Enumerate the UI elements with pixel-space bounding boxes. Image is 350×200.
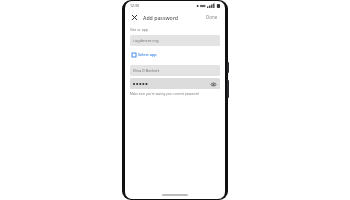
button[interactable]: Done	[203, 12, 221, 22]
staticText: Site or app	[130, 27, 149, 32]
button[interactable]: Elisa D Beckett	[130, 65, 220, 76]
button[interactable]: Show password	[130, 78, 220, 89]
button[interactable]: Select app	[130, 50, 159, 59]
staticText: 12:30	[130, 3, 139, 8]
staticText: Add password	[143, 14, 179, 21]
staticText: Select app	[138, 52, 157, 57]
staticText: Make sure you're saving your current pas…	[130, 92, 199, 96]
staticText: Elisa D Beckett	[133, 68, 160, 73]
staticText: i.ugdmere.org	[133, 38, 159, 43]
button[interactable]: i.ugdmere.org	[130, 35, 220, 46]
button[interactable]: Show password	[209, 80, 217, 88]
staticText: Done	[206, 14, 218, 20]
button[interactable]: Close	[129, 12, 140, 23]
